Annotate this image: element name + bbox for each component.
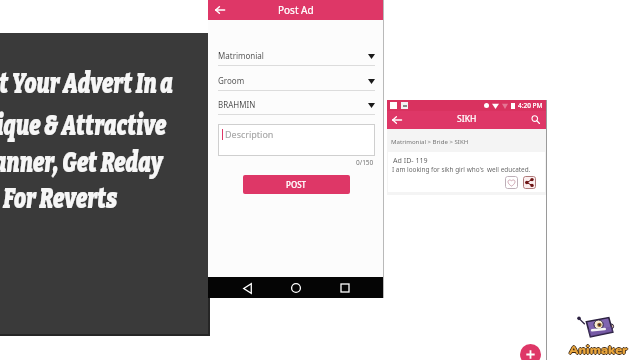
staticText: Ad ID- 119 bbox=[393, 155, 428, 165]
button[interactable]: Favourite bbox=[505, 176, 518, 189]
button[interactable]: Add new ad bbox=[520, 344, 541, 360]
button[interactable]: POST bbox=[243, 175, 350, 194]
staticText: Description bbox=[225, 128, 274, 140]
button[interactable]: Description bbox=[218, 124, 375, 156]
staticText: 0/150 bbox=[356, 158, 374, 167]
staticText: Animaker bbox=[569, 340, 628, 357]
staticText: Animaker bbox=[569, 341, 628, 358]
staticText: Animaker bbox=[569, 342, 628, 359]
button[interactable]: Search bbox=[528, 112, 542, 126]
staticText: I am looking for sikh girl who's well ed… bbox=[392, 165, 531, 174]
staticText: Matrimonial > Bride > SIKH bbox=[391, 137, 469, 145]
button[interactable]: Home bbox=[288, 280, 304, 296]
staticText: SIKH bbox=[457, 113, 477, 125]
staticText: Post Ad bbox=[278, 3, 314, 17]
staticText: Matrimonial bbox=[218, 50, 264, 61]
button[interactable]: Share bbox=[523, 176, 536, 189]
staticText: Groom bbox=[218, 75, 245, 86]
button[interactable]: Back bbox=[212, 2, 228, 18]
staticText: BRAHMIN bbox=[218, 99, 256, 110]
staticText: POST bbox=[286, 179, 307, 190]
button[interactable]: Recents bbox=[337, 280, 353, 296]
staticText: Animaker bbox=[570, 341, 629, 358]
staticText: Manner, Get Reday bbox=[0, 146, 163, 180]
staticText: 4:20 PM bbox=[518, 101, 543, 110]
button[interactable]: BRAHMIN bbox=[218, 97, 375, 115]
button[interactable]: Back bbox=[390, 113, 404, 127]
staticText: For Reverts bbox=[3, 182, 118, 216]
staticText: Unique & Attractive bbox=[0, 109, 166, 143]
button[interactable]: Back bbox=[239, 280, 255, 296]
staticText: Post Your Advert In a bbox=[0, 67, 173, 101]
staticText: Animaker bbox=[568, 341, 627, 358]
button[interactable]: Matrimonial bbox=[218, 48, 375, 66]
button[interactable]: Groom bbox=[218, 73, 375, 91]
